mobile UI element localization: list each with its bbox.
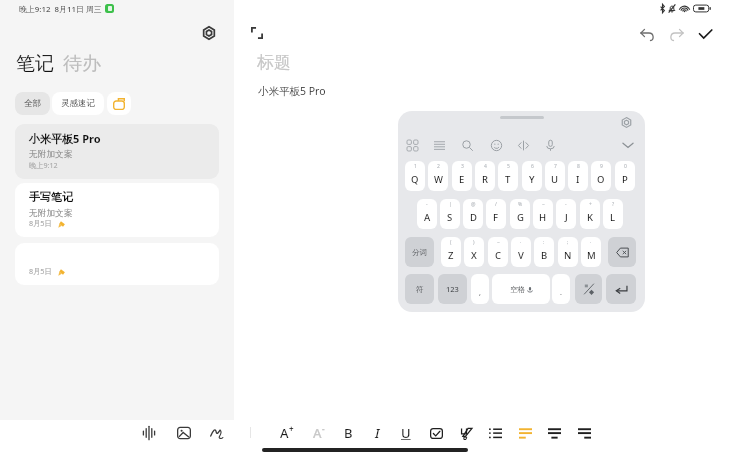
staticText: 待办	[63, 52, 101, 76]
staticText: K	[587, 211, 594, 224]
button[interactable]: Highlight	[452, 418, 480, 448]
staticText: 6	[531, 163, 534, 170]
staticText: T	[505, 173, 511, 186]
staticText: N	[564, 249, 572, 262]
staticText: 空格	[510, 285, 525, 294]
button[interactable]: Align right	[570, 418, 598, 448]
staticText: C	[495, 249, 502, 262]
staticText: ;	[567, 239, 569, 246]
staticText: +	[289, 423, 294, 434]
button[interactable]: Bulleted list	[481, 418, 509, 448]
button[interactable]: -	[556, 199, 576, 229]
button[interactable]: search	[457, 135, 477, 155]
staticText: G	[517, 211, 524, 224]
staticText: V	[518, 249, 524, 262]
staticText: A	[424, 211, 431, 224]
button[interactable]: -	[417, 199, 437, 229]
button[interactable]: ~	[488, 237, 508, 267]
button[interactable]: mic	[540, 135, 560, 155]
staticText: +	[589, 201, 592, 208]
button[interactable]: 2	[428, 161, 448, 191]
staticText: /	[495, 201, 497, 208]
button[interactable]: Italic	[363, 418, 391, 448]
button[interactable]: 7	[545, 161, 565, 191]
button[interactable]: /	[486, 199, 506, 229]
staticText: ~	[497, 239, 500, 246]
staticText: I	[375, 424, 380, 442]
button[interactable]: ~	[533, 199, 553, 229]
button[interactable]: Decrease text size	[305, 418, 333, 448]
staticText: -	[565, 201, 567, 208]
staticText: 小米平板5 Pro	[258, 84, 326, 98]
staticText: 小米平板5 Pro	[29, 131, 101, 146]
button[interactable]: Align left	[511, 418, 539, 448]
staticText: H	[539, 211, 547, 224]
button[interactable]: 4	[475, 161, 495, 191]
button[interactable]: grid	[402, 135, 422, 155]
button[interactable]: list	[429, 135, 449, 155]
button[interactable]: Align center	[540, 418, 568, 448]
button[interactable]: Backspace	[608, 237, 636, 267]
button[interactable]: ;	[558, 237, 578, 267]
button[interactable]: ·	[511, 237, 531, 267]
button[interactable]: 1	[405, 161, 425, 191]
button[interactable]: |	[440, 199, 460, 229]
staticText: M	[587, 249, 596, 262]
button[interactable]: %	[510, 199, 530, 229]
button[interactable]: 符	[405, 274, 434, 304]
button[interactable]: 8月5日	[15, 243, 219, 285]
button[interactable]: 分词	[405, 237, 434, 267]
button[interactable]: 5	[498, 161, 518, 191]
button[interactable]: +	[580, 199, 600, 229]
staticText: 无附加文案	[29, 149, 73, 160]
button[interactable]: :	[534, 237, 554, 267]
button[interactable]: 3	[452, 161, 472, 191]
staticText: @	[471, 201, 476, 208]
button[interactable]: Increase text size	[273, 418, 301, 448]
button[interactable]: .	[552, 274, 570, 304]
button[interactable]: Image	[169, 418, 199, 448]
button[interactable]: 0	[615, 161, 635, 191]
button[interactable]: trans	[513, 135, 533, 155]
staticText: F	[493, 211, 499, 224]
staticText: 0	[624, 163, 627, 170]
button[interactable]: Redo	[663, 21, 689, 47]
button[interactable]: 8	[568, 161, 588, 191]
button[interactable]: 全部	[15, 92, 50, 115]
button[interactable]: 小米平板5 Pro	[15, 124, 219, 179]
staticText: L	[610, 211, 616, 224]
button[interactable]: Checklist	[422, 418, 450, 448]
button[interactable]: ,	[471, 274, 489, 304]
button[interactable]: emoji	[486, 135, 506, 155]
button[interactable]: Underline	[392, 418, 420, 448]
button[interactable]: ?	[603, 199, 623, 229]
button[interactable]: Folders	[107, 92, 131, 115]
button[interactable]: ·	[581, 237, 601, 267]
button[interactable]: Audio	[134, 418, 164, 448]
button[interactable]: Expand	[247, 23, 267, 43]
button[interactable]: 灵感速记	[52, 92, 104, 115]
button[interactable]: 123	[438, 274, 467, 304]
staticText: O	[597, 173, 605, 186]
button[interactable]: Hide keyboard	[618, 135, 638, 155]
button[interactable]: 9	[591, 161, 611, 191]
button[interactable]: Punctuation	[575, 274, 602, 304]
staticText: 7	[554, 163, 557, 170]
button[interactable]: 6	[522, 161, 542, 191]
staticText: 1	[414, 163, 417, 170]
button[interactable]: Bold	[334, 418, 362, 448]
staticText: I	[576, 173, 580, 186]
button[interactable]: 空格	[492, 274, 550, 304]
button[interactable]: Settings	[198, 22, 220, 44]
button[interactable]: Undo	[634, 21, 660, 47]
button[interactable]: Enter	[606, 274, 636, 304]
button[interactable]: @	[463, 199, 483, 229]
button[interactable]: 手写笔记	[15, 183, 219, 237]
button[interactable]: Handwriting	[202, 418, 232, 448]
button[interactable]: (	[441, 237, 461, 267]
staticText: 灵感速记	[61, 98, 95, 109]
button[interactable]: Done	[692, 21, 718, 47]
button[interactable]: )	[464, 237, 484, 267]
staticText: )	[473, 239, 475, 246]
button[interactable]: Keyboard settings	[617, 113, 635, 131]
